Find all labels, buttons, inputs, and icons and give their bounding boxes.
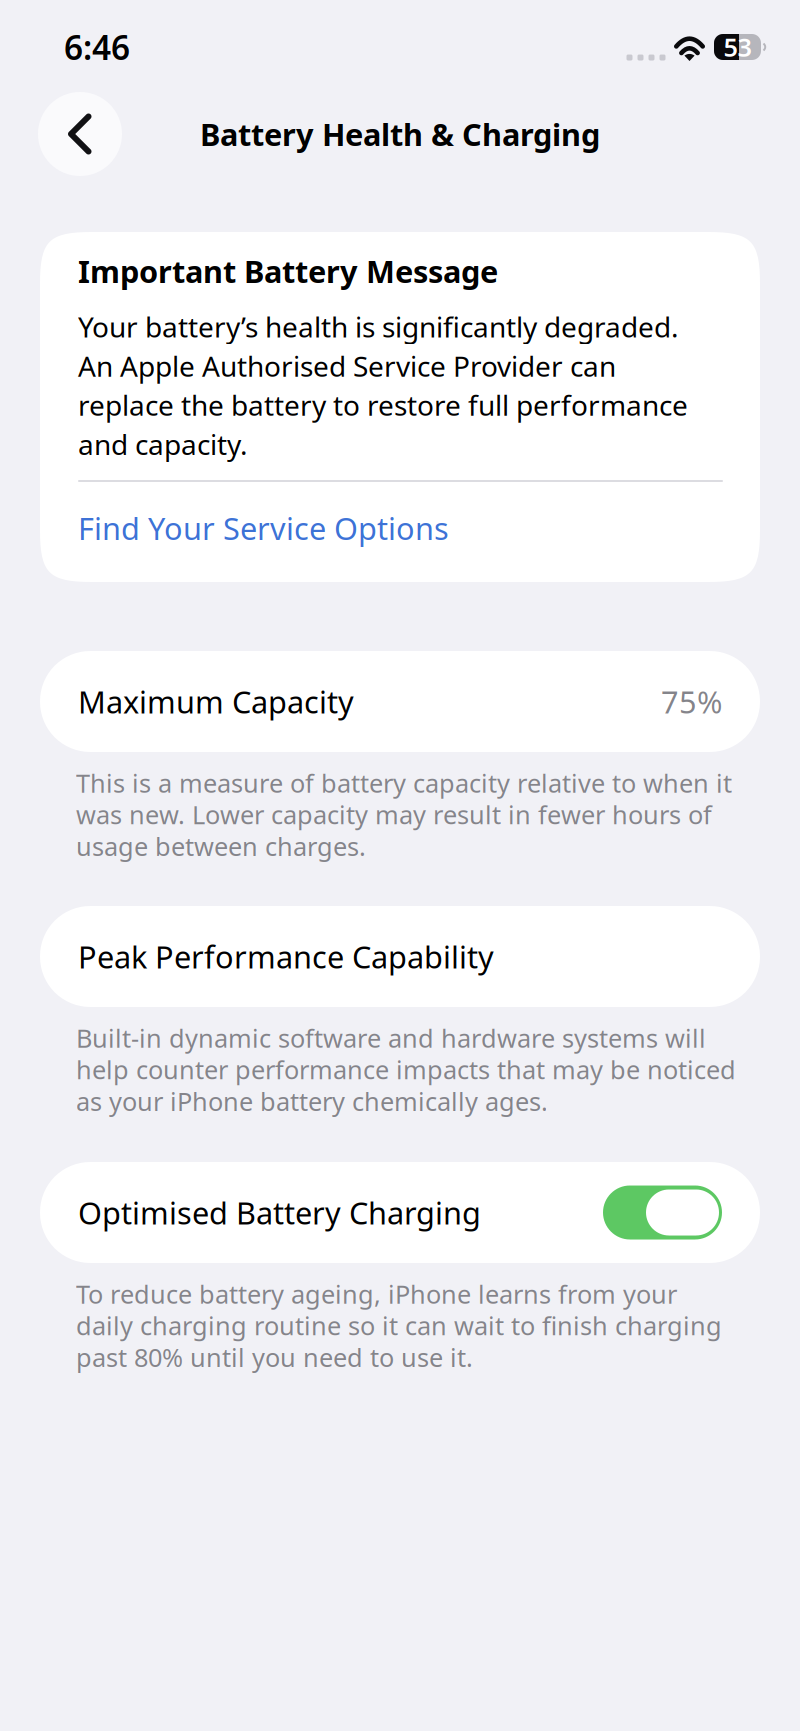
staticText: Find Your Service Options xyxy=(78,508,449,548)
staticText: Maximum Capacity xyxy=(78,681,354,722)
staticText: This is a measure of battery capacity re… xyxy=(76,766,732,863)
staticText: 53 xyxy=(723,30,751,64)
staticText: Your battery’s health is significantly d… xyxy=(78,308,688,463)
staticText: Optimised Battery Charging xyxy=(78,1192,481,1233)
button[interactable]: Back xyxy=(38,92,122,176)
staticText: To reduce battery ageing, iPhone learns … xyxy=(76,1277,722,1374)
button[interactable]: Peak Performance Capability xyxy=(40,906,760,1007)
staticText: Built-in dynamic software and hardware s… xyxy=(76,1021,736,1118)
staticText: Peak Performance Capability xyxy=(78,936,494,977)
staticText: Battery Health & Charging xyxy=(200,114,600,154)
staticText: 6:46 xyxy=(64,25,130,69)
button[interactable]: Find Your Service Options xyxy=(78,511,449,545)
staticText: Important Battery Message xyxy=(78,251,498,291)
button[interactable]: Optimised Battery Charging xyxy=(603,1185,722,1239)
staticText: 75% xyxy=(661,681,722,722)
